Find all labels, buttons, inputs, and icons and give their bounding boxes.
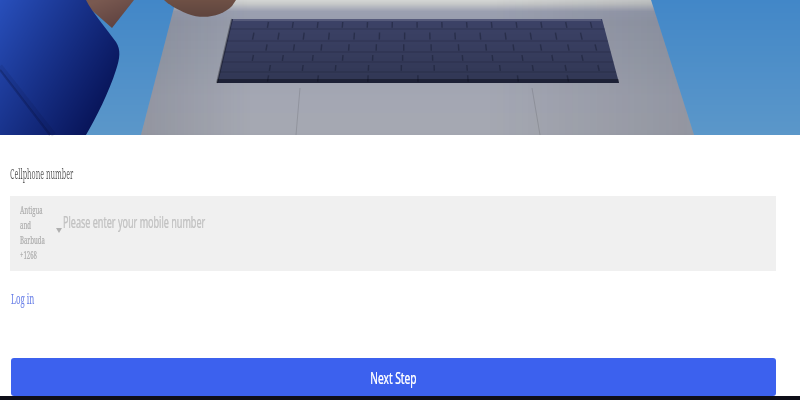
staticText: Cellphone number [10, 164, 74, 183]
staticText: Please enter your mobile number [63, 211, 205, 233]
button[interactable]: Log in [11, 289, 35, 308]
button[interactable]: Antigua [20, 202, 62, 262]
staticText: and [20, 217, 31, 232]
staticText: Log in [11, 289, 34, 308]
staticText: +1268 [20, 247, 37, 262]
staticText: Next Step [370, 366, 417, 389]
staticText: Antigua [20, 202, 43, 217]
staticText: Barbuda [20, 232, 45, 247]
button[interactable]: Next Step [11, 358, 776, 396]
